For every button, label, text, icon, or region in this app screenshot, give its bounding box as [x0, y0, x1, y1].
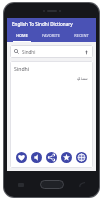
staticText: English To Sindhi Dictionary — [12, 21, 73, 27]
button[interactable]: Open web — [76, 152, 87, 163]
other: Back — [79, 182, 85, 187]
staticText: HOME — [16, 33, 28, 38]
staticText: FAVORITE — [42, 33, 60, 38]
button[interactable]: Home — [40, 180, 64, 189]
staticText: سنڌي — [77, 76, 88, 81]
button[interactable]: Bookmark — [61, 152, 72, 163]
button[interactable]: Sindhi — [10, 45, 93, 58]
button[interactable]: Share — [46, 152, 57, 163]
button[interactable]: Favorite — [16, 152, 27, 163]
staticText: Sindhi — [14, 65, 30, 72]
staticText: RECENT — [74, 33, 89, 38]
button[interactable]: FAVORITE — [36, 30, 66, 42]
button[interactable]: Voice search — [83, 49, 89, 55]
button[interactable]: Pronounce — [31, 152, 42, 163]
staticText: Sindhi — [22, 49, 36, 55]
button[interactable]: RECENT — [66, 30, 96, 42]
button[interactable]: HOME — [7, 30, 36, 42]
